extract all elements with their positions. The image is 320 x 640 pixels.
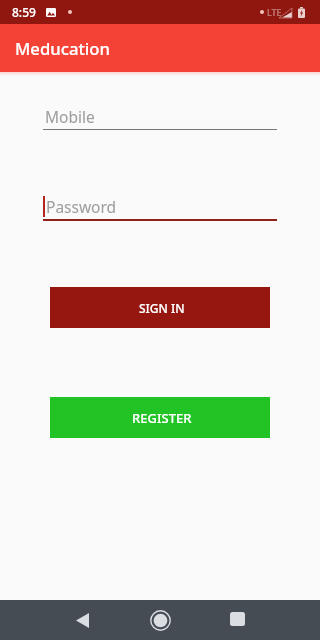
- button[interactable]: SIGN IN: [50, 287, 270, 328]
- button[interactable]: Password: [43, 192, 277, 222]
- staticText: Meducation: [15, 37, 111, 60]
- staticText: Password: [46, 196, 117, 217]
- button[interactable]: Home: [136, 600, 184, 640]
- staticText: LTE: [267, 6, 282, 18]
- staticText: Mobile: [45, 106, 95, 127]
- staticText: SIGN IN: [139, 300, 185, 316]
- button[interactable]: Mobile: [43, 101, 277, 131]
- button[interactable]: Recents: [184, 600, 291, 640]
- staticText: 8:59: [12, 4, 36, 20]
- button[interactable]: Back: [29, 600, 136, 640]
- button[interactable]: REGISTER: [50, 397, 270, 438]
- staticText: REGISTER: [132, 409, 192, 427]
